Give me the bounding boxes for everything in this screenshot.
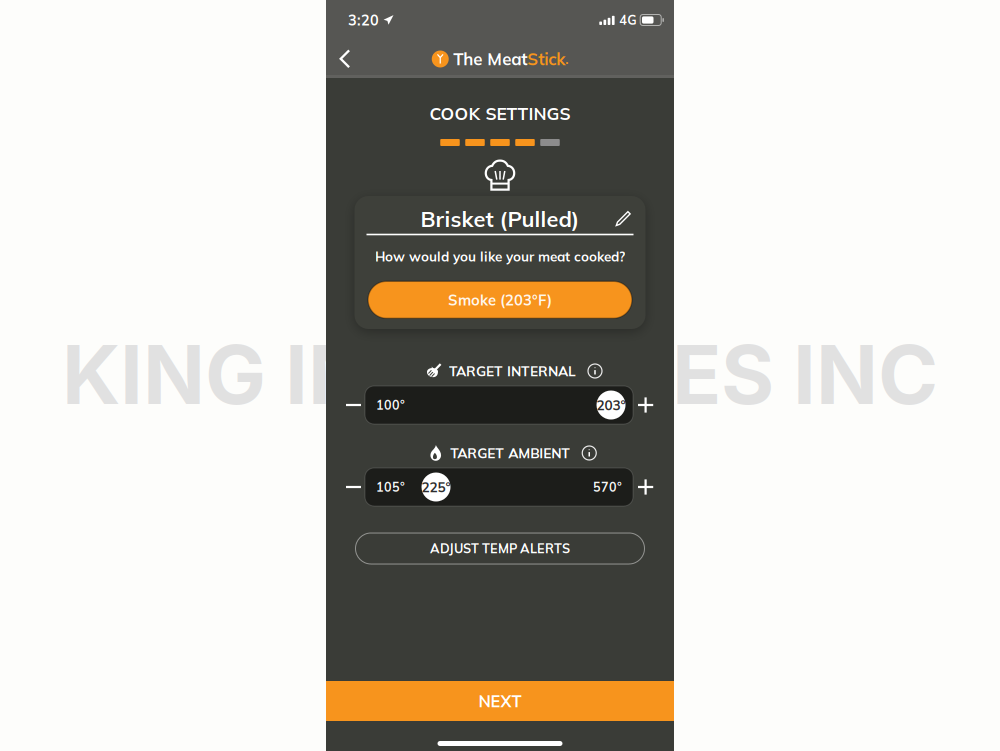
staticText: 570°: [593, 479, 622, 495]
staticText: TARGET INTERNAL: [449, 362, 576, 380]
staticText: 203°: [596, 396, 625, 414]
staticText: 4G: [619, 12, 636, 28]
staticText: How would you like your meat cooked?: [375, 248, 625, 265]
staticText: Stick: [527, 48, 565, 70]
staticText: COOK SETTINGS: [429, 103, 570, 124]
staticText: Smoke (203°F): [448, 290, 552, 309]
staticText: KING INDUSTRIES INC: [62, 325, 938, 424]
button[interactable]: ADJUST TEMP ALERTS: [355, 533, 644, 564]
staticText: NEXT: [478, 691, 521, 711]
staticText: The Meat: [453, 48, 527, 70]
staticText: .: [565, 51, 568, 67]
button[interactable]: Decrease: [338, 386, 368, 424]
staticText: TARGET AMBIENT: [450, 444, 570, 462]
staticText: ADJUST TEMP ALERTS: [430, 541, 570, 556]
button[interactable]: Decrease: [338, 468, 368, 506]
button[interactable]: Increase: [631, 386, 661, 424]
button[interactable]: Increase: [631, 468, 661, 506]
staticText: 3:20: [348, 11, 379, 29]
staticText: 225°: [421, 478, 450, 496]
button[interactable]: Back: [328, 40, 362, 78]
button[interactable]: Edit: [615, 211, 631, 227]
staticText: 100°: [376, 397, 405, 413]
staticText: Brisket (Pulled): [420, 205, 579, 232]
button[interactable]: Smoke (203°F): [368, 281, 632, 318]
button[interactable]: NEXT: [326, 681, 674, 721]
staticText: 105°: [376, 479, 405, 495]
